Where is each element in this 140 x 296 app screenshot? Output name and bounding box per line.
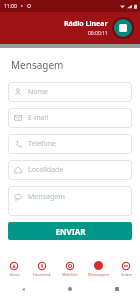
staticText: Mensagem bbox=[88, 272, 109, 277]
button[interactable]: Telefone bbox=[8, 134, 132, 154]
button[interactable]: Mensagem bbox=[8, 186, 132, 216]
button[interactable]: Back bbox=[0, 282, 46, 296]
staticText: 00:00:11 bbox=[88, 30, 108, 37]
button[interactable]: Sobre bbox=[112, 256, 140, 282]
button[interactable]: Início bbox=[0, 256, 28, 282]
staticText: Localidade bbox=[28, 165, 64, 175]
staticText: Início bbox=[9, 272, 20, 277]
button[interactable]: Recents bbox=[93, 282, 140, 296]
button[interactable]: Mensagem bbox=[84, 256, 112, 282]
button[interactable]: ENVIAR bbox=[8, 222, 132, 240]
staticText: Facebook bbox=[33, 272, 51, 277]
button[interactable]: Stop playback bbox=[112, 17, 134, 39]
staticText: Telefone bbox=[28, 139, 57, 149]
button[interactable]: E-mail bbox=[8, 108, 132, 128]
staticText: E-mail bbox=[28, 113, 49, 123]
staticText: Sobre bbox=[121, 272, 132, 277]
button[interactable]: Localidade bbox=[8, 160, 132, 180]
staticText: 11:00 bbox=[4, 3, 17, 10]
button[interactable]: Facebook bbox=[28, 256, 56, 282]
staticText: Mensagem bbox=[28, 192, 65, 202]
button[interactable]: Nome bbox=[8, 82, 132, 102]
button[interactable]: WebSite bbox=[56, 256, 84, 282]
button[interactable]: Home bbox=[46, 282, 93, 296]
staticText: ENVIAR bbox=[55, 226, 86, 237]
staticText: Mensagem bbox=[11, 58, 64, 72]
staticText: Rádio Linear bbox=[64, 19, 108, 29]
staticText: WebSite bbox=[62, 272, 78, 277]
staticText: Nome bbox=[28, 87, 49, 97]
